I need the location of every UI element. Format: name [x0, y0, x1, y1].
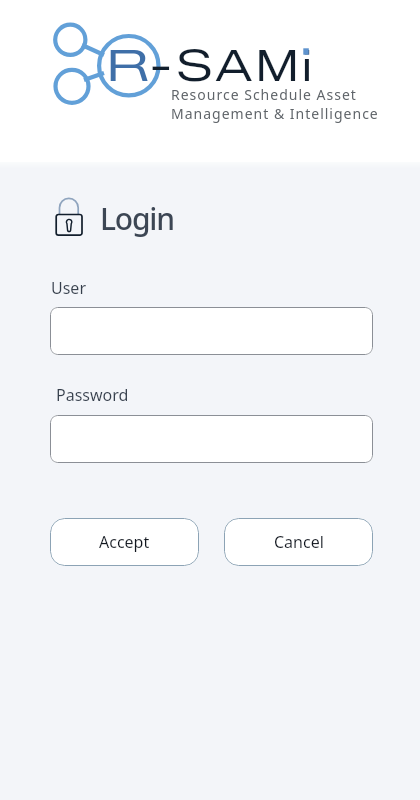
staticText: R: [107, 40, 151, 92]
staticText: Accept: [99, 531, 150, 553]
staticText: Password: [56, 384, 129, 406]
staticText: Login: [100, 198, 174, 239]
staticText: -SAMi: [149, 40, 316, 92]
button[interactable]: [50, 415, 373, 463]
staticText: User: [51, 277, 86, 299]
staticText: Resource Schedule Asset: [171, 85, 357, 104]
button[interactable]: [50, 307, 373, 355]
staticText: Management & Intelligence: [171, 104, 379, 123]
staticText: Cancel: [274, 531, 324, 553]
button[interactable]: Cancel: [224, 518, 373, 566]
other: Login: [54, 196, 84, 236]
button[interactable]: Accept: [50, 518, 199, 566]
button[interactable]: Login: [50, 193, 180, 239]
